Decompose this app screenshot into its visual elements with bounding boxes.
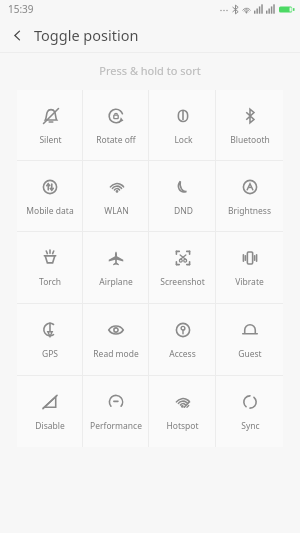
button[interactable]: Guest [216, 304, 283, 375]
button[interactable]: WLAN [83, 161, 149, 231]
button[interactable]: Brightness [216, 161, 283, 231]
staticText: Silent [39, 134, 62, 146]
staticText: Disable [35, 420, 65, 432]
staticText: Airplane [99, 276, 133, 288]
staticText: Toggle position [34, 25, 139, 45]
button[interactable]: Read mode [83, 304, 149, 375]
button[interactable]: DND [149, 161, 216, 231]
button[interactable]: GPS [17, 304, 83, 375]
staticText: Torch [39, 276, 61, 288]
button[interactable]: Disable [17, 376, 83, 447]
staticText: Press & hold to sort [0, 63, 300, 78]
button[interactable]: Screenshot [149, 232, 216, 303]
staticText: Rotate off [96, 134, 136, 146]
staticText: Performance [90, 420, 142, 432]
button[interactable]: Airplane [83, 232, 149, 303]
staticText: Brightness [228, 205, 271, 217]
staticText: 15:39 [8, 2, 34, 16]
staticText: Vibrate [235, 276, 264, 288]
button[interactable]: Hotspot [149, 376, 216, 447]
button[interactable]: Lock [149, 90, 216, 160]
button[interactable]: Bluetooth [216, 90, 283, 160]
staticText: Guest [238, 348, 262, 360]
button[interactable]: Vibrate [216, 232, 283, 303]
staticText: DND [174, 205, 193, 217]
staticText: Sync [241, 420, 260, 432]
button[interactable]: Rotate off [83, 90, 149, 160]
staticText: Screenshot [160, 276, 205, 288]
button[interactable]: Performance [83, 376, 149, 447]
button[interactable]: Torch [17, 232, 83, 303]
staticText: Mobile data [26, 205, 74, 217]
staticText: Access [169, 348, 196, 360]
staticText: GPS [42, 348, 58, 360]
staticText: Lock [174, 134, 193, 146]
staticText: Hotspot [166, 420, 199, 432]
button[interactable]: Back [0, 18, 34, 52]
button[interactable]: Silent [17, 90, 83, 160]
staticText: WLAN [104, 205, 129, 217]
staticText: Read mode [93, 348, 139, 360]
button[interactable]: Sync [216, 376, 283, 447]
staticText: Bluetooth [230, 134, 270, 146]
button[interactable]: Mobile data [17, 161, 83, 231]
button[interactable]: Access [149, 304, 216, 375]
